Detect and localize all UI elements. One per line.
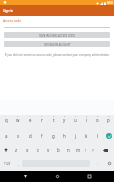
staticText: Access code <box>3 19 21 23</box>
button[interactable]: z <box>11 143 22 157</box>
button[interactable]: ! <box>83 143 89 157</box>
button[interactable]: Emoji <box>104 157 114 170</box>
button[interactable]: Recents <box>82 171 96 182</box>
staticText: f <box>41 133 43 139</box>
staticText: 1 <box>5 115 7 118</box>
staticText: r <box>41 117 43 123</box>
button[interactable]: 3 <box>24 115 36 129</box>
button[interactable]: c <box>33 143 43 157</box>
staticText: m <box>76 147 81 153</box>
staticText: y <box>63 117 66 123</box>
staticText: 2 <box>17 115 19 118</box>
button[interactable]: Shift <box>0 143 11 157</box>
button[interactable]: a <box>0 129 12 143</box>
staticText: h <box>63 133 66 139</box>
staticText: p <box>107 117 110 123</box>
button[interactable]: Backspace <box>97 143 114 157</box>
button[interactable]: 6 <box>59 115 70 129</box>
button[interactable]: 1 <box>0 115 12 129</box>
staticText: OR SIGN IN AS GUEST <box>44 43 71 47</box>
button[interactable]: 7 <box>70 115 81 129</box>
staticText: o <box>96 117 99 123</box>
button[interactable]: Back <box>18 171 32 182</box>
button[interactable]: v <box>43 143 53 157</box>
staticText: q <box>5 117 8 123</box>
staticText: u <box>74 117 77 123</box>
staticText: e <box>29 117 32 123</box>
button[interactable]: ?123 <box>0 157 14 170</box>
staticText: 9 <box>97 115 99 118</box>
button[interactable]: g <box>48 129 59 143</box>
button[interactable]: d <box>24 129 36 143</box>
button[interactable]: ? <box>89 143 97 157</box>
button[interactable]: m <box>73 143 83 157</box>
button[interactable]: 4 <box>36 115 48 129</box>
button[interactable]: , <box>14 157 22 170</box>
staticText: a <box>5 133 8 139</box>
button[interactable]: 2 <box>12 115 24 129</box>
button[interactable]: 5 <box>48 115 59 129</box>
button[interactable]: Enter <box>103 129 114 143</box>
staticText: i <box>86 117 88 123</box>
button[interactable]: k <box>81 129 92 143</box>
staticText: z <box>15 147 18 153</box>
staticText: v <box>47 147 50 153</box>
staticText: t <box>53 117 55 123</box>
staticText: If you did not receive an access code, p… <box>2 53 112 57</box>
staticText: b <box>57 147 60 153</box>
staticText: s <box>17 133 20 139</box>
button[interactable]: b <box>53 143 63 157</box>
staticText: x <box>26 147 29 153</box>
button[interactable]: h <box>59 129 70 143</box>
button[interactable]: OR SIGN IN AS GUEST <box>4 41 110 47</box>
staticText: ?123 <box>4 162 11 166</box>
staticText: 7 <box>75 115 77 118</box>
staticText: 3 <box>29 115 31 118</box>
staticText: c <box>37 147 40 153</box>
staticText: 6 <box>64 115 66 118</box>
staticText: Sign in <box>3 9 14 13</box>
button[interactable]: n <box>63 143 73 157</box>
button[interactable]: s <box>12 129 24 143</box>
staticText: 4 <box>41 115 43 118</box>
button[interactable]: 9 <box>92 115 103 129</box>
staticText: 5 <box>53 115 55 118</box>
staticText: g <box>52 133 55 139</box>
staticText: j <box>75 133 77 139</box>
staticText: . <box>97 161 98 166</box>
button[interactable]: 0 <box>103 115 114 129</box>
button[interactable]: l <box>92 129 103 143</box>
button[interactable]: SIGN IN USING ACCESS CODE <box>4 32 110 38</box>
staticText: ? <box>92 148 94 153</box>
staticText: k <box>85 133 88 139</box>
button[interactable]: x <box>22 143 33 157</box>
button[interactable]: 8 <box>81 115 92 129</box>
staticText: SIGN IN USING ACCESS CODE <box>39 34 75 38</box>
staticText: ! <box>85 148 87 153</box>
button[interactable]: Home <box>50 171 64 182</box>
staticText: n <box>67 147 70 153</box>
staticText: d <box>29 133 32 139</box>
staticText: w <box>16 117 20 123</box>
staticText: l <box>97 133 99 139</box>
staticText: , <box>18 161 19 166</box>
staticText: 0 <box>108 115 110 118</box>
button[interactable]: f <box>36 129 48 143</box>
staticText: 8 <box>86 115 88 118</box>
button[interactable]: j <box>70 129 81 143</box>
staticText: 5:53 <box>107 1 113 5</box>
